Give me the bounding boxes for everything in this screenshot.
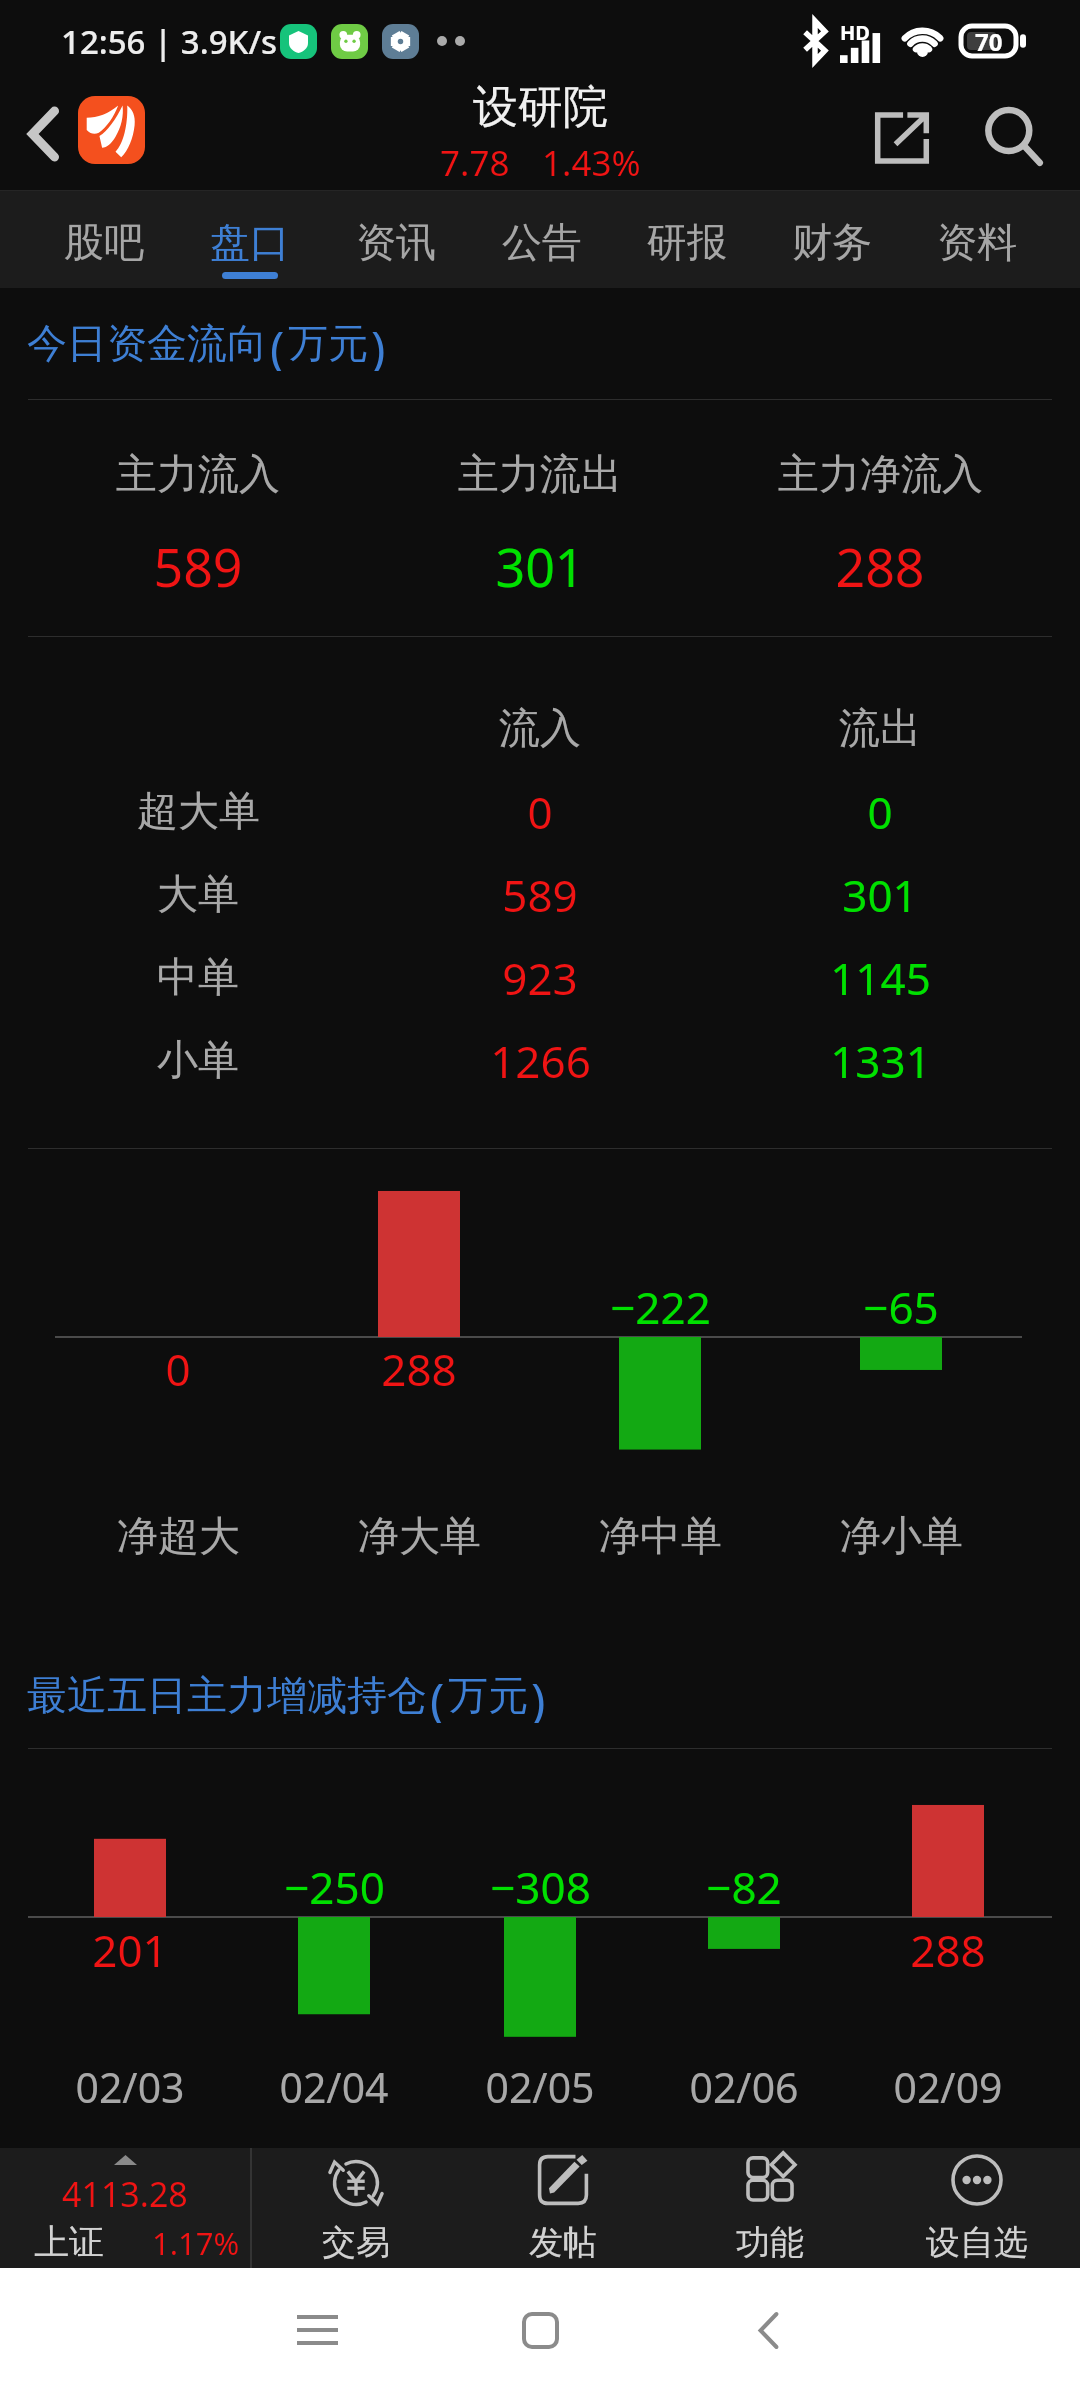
staticText: 1266 (490, 1031, 591, 1091)
staticText: 万元 (448, 1670, 528, 1720)
staticText: 净大单 (358, 1511, 481, 1563)
button[interactable]: Eastmoney (78, 96, 145, 164)
staticText: 功能 (736, 2221, 804, 2264)
staticText: 1.43% (542, 139, 641, 187)
staticText: 4113.28 (62, 2171, 188, 2217)
staticText: −65 (863, 1277, 939, 1337)
staticText: 大单 (157, 869, 239, 921)
staticText: 万元 (288, 318, 368, 368)
staticText: 288 (835, 531, 925, 602)
staticText: 02/06 (689, 2059, 799, 2115)
button[interactable]: 发帖 (459, 2148, 666, 2268)
staticText: 7.78 (440, 139, 510, 187)
staticText: ) (371, 315, 386, 371)
staticText: 589 (153, 531, 243, 602)
staticText: 公告 (502, 217, 582, 267)
button[interactable]: 公告 (469, 191, 614, 288)
button[interactable]: 财务 (759, 191, 904, 288)
button[interactable]: Share (862, 98, 942, 178)
button[interactable]: 盘口 (177, 191, 323, 288)
staticText: 0 (867, 782, 893, 842)
button[interactable]: Recents (262, 2275, 372, 2385)
staticText: 70 (975, 25, 1003, 58)
staticText: 净中单 (599, 1511, 722, 1563)
staticText: 超大单 (137, 786, 260, 838)
staticText: 923 (502, 948, 578, 1008)
button[interactable]: 设自选 (873, 2148, 1080, 2268)
staticText: ( (270, 315, 285, 371)
staticText: 设自选 (926, 2221, 1028, 2264)
staticText: 288 (910, 1920, 986, 1980)
staticText: −308 (490, 1857, 591, 1917)
staticText: 1331 (830, 1031, 931, 1091)
button[interactable]: 交易 (252, 2148, 459, 2268)
staticText: 中单 (157, 952, 239, 1004)
button[interactable]: 资讯 (323, 191, 469, 288)
staticText: ) (531, 1667, 546, 1723)
staticText: 净超大 (117, 1511, 240, 1563)
button[interactable]: 资料 (904, 191, 1049, 288)
staticText: 主力流出 (458, 449, 622, 501)
staticText: 12:56 | 3.9K/s (61, 19, 278, 64)
staticText: 交易 (322, 2221, 390, 2264)
staticText: 02/03 (75, 2059, 185, 2115)
staticText: 财务 (792, 217, 872, 267)
staticText: 今日资金流向 (27, 318, 267, 368)
staticText: 流入 (499, 703, 581, 755)
staticText: 589 (502, 865, 578, 925)
staticText: 201 (92, 1920, 168, 1980)
staticText: 资料 (937, 217, 1017, 267)
staticText: 0 (527, 782, 553, 842)
staticText: −222 (610, 1277, 711, 1337)
button[interactable]: 功能 (666, 2148, 873, 2268)
staticText: 小单 (157, 1035, 239, 1087)
staticText: 02/04 (279, 2059, 389, 2115)
staticText: 发帖 (529, 2221, 597, 2264)
staticText: −250 (284, 1857, 385, 1917)
button[interactable]: Search (975, 98, 1055, 178)
staticText: 净小单 (840, 1511, 963, 1563)
staticText: 上证 (34, 2220, 104, 2264)
staticText: 0 (165, 1339, 191, 1399)
button[interactable]: 4113.28 (0, 2148, 250, 2268)
button[interactable]: 研报 (614, 191, 759, 288)
staticText: 301 (495, 531, 585, 602)
staticText: 研报 (647, 217, 727, 267)
staticText: −82 (706, 1857, 782, 1917)
button[interactable]: 股吧 (31, 191, 177, 288)
staticText: ( (430, 1667, 445, 1723)
staticText: 最近五日主力增减持仓 (27, 1670, 427, 1720)
staticText: 02/05 (485, 2059, 595, 2115)
staticText: 301 (842, 865, 918, 925)
button[interactable]: Back (713, 2275, 823, 2385)
staticText: 流出 (839, 703, 921, 755)
button[interactable]: Back (3, 94, 83, 174)
staticText: 资讯 (356, 217, 436, 267)
staticText: 设研院 (473, 79, 608, 136)
staticText: HD (840, 19, 870, 46)
staticText: 主力净流入 (778, 449, 983, 501)
staticText: 股吧 (64, 217, 144, 267)
button[interactable]: Home (485, 2275, 595, 2385)
staticText: 盘口 (210, 217, 290, 267)
staticText: 1.17% (152, 2222, 240, 2264)
staticText: 02/09 (893, 2059, 1003, 2115)
staticText: 主力流入 (116, 449, 280, 501)
staticText: 1145 (830, 948, 931, 1008)
staticText: 288 (381, 1339, 457, 1399)
